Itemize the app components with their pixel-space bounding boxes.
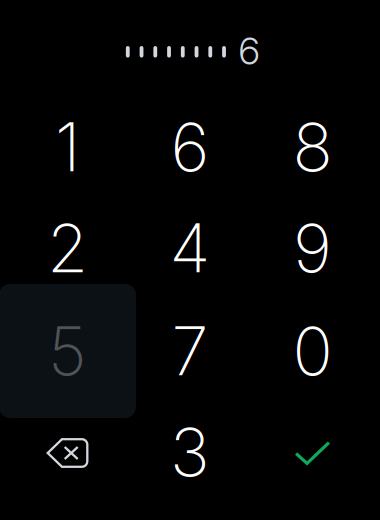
staticText: 0 [292, 311, 332, 391]
button[interactable]: Delete [0, 386, 136, 520]
button[interactable]: 7 [121, 284, 258, 418]
staticText: 7 [171, 311, 208, 391]
staticText: 2 [47, 208, 88, 288]
staticText: 5 [48, 311, 87, 391]
staticText: 1 [55, 107, 80, 187]
button[interactable]: 1 [0, 80, 136, 214]
button[interactable]: 4 [121, 181, 258, 315]
button[interactable]: 6 [121, 80, 258, 214]
staticText: 6 [238, 28, 259, 74]
staticText: 6 [170, 107, 209, 187]
button[interactable]: Confirm passcode [244, 386, 380, 520]
staticText: 4 [169, 208, 210, 288]
button[interactable]: 8 [244, 80, 380, 214]
button[interactable]: 0 [244, 284, 380, 418]
button[interactable]: 2 [0, 181, 136, 315]
staticText: 8 [292, 107, 332, 187]
button[interactable]: 5 [0, 284, 136, 418]
staticText: 9 [293, 208, 332, 288]
button[interactable]: 9 [244, 181, 380, 315]
button[interactable]: 3 [121, 385, 258, 519]
staticText: 3 [170, 412, 210, 492]
